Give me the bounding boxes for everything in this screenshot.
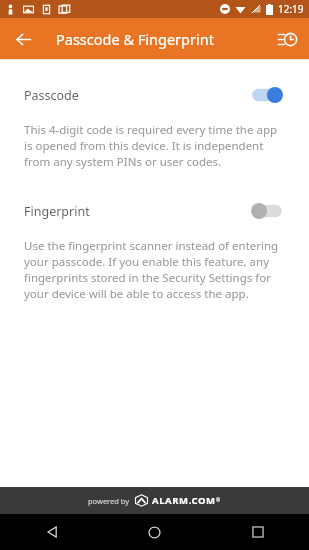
button[interactable]: Back <box>0 514 103 550</box>
staticText: Passcode <box>24 87 79 104</box>
staticText: This 4-digit code is required every time… <box>24 122 285 170</box>
staticText: Fingerprint <box>24 203 90 220</box>
staticText: Use the fingerprint scanner instead of e… <box>24 238 285 302</box>
staticText: ALARM.COM <box>152 494 216 507</box>
button[interactable]: Recent apps <box>206 514 309 550</box>
button[interactable]: History <box>270 22 304 56</box>
staticText: 12:19 <box>278 2 304 16</box>
button[interactable]: Fingerprint <box>0 194 309 228</box>
staticText: Passcode & Fingerprint <box>56 29 214 49</box>
button[interactable]: Back <box>6 22 40 56</box>
button[interactable]: Passcode <box>0 78 309 112</box>
staticText: ® <box>216 497 221 504</box>
button[interactable]: Home <box>103 514 206 550</box>
staticText: powered by <box>88 496 130 506</box>
